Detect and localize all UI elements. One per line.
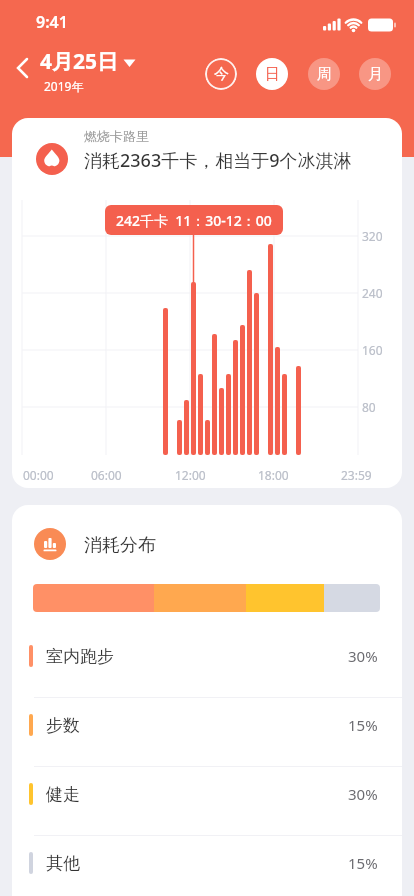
staticText: 240 <box>362 285 383 301</box>
staticText: 周 <box>317 65 332 84</box>
staticText: 日 <box>265 65 280 84</box>
staticText: 消耗分布 <box>84 534 156 557</box>
staticText: 室内跑步 <box>46 646 114 667</box>
staticText: 燃烧卡路里 <box>84 128 149 144</box>
button[interactable]: 周 <box>308 58 340 90</box>
staticText: 30% <box>348 646 378 666</box>
button[interactable]: 今 <box>205 58 237 90</box>
button[interactable]: 步数 <box>29 701 378 749</box>
staticText: 23:59 <box>341 467 372 483</box>
button[interactable]: 室内跑步 <box>29 632 378 680</box>
staticText: 月 <box>368 65 383 84</box>
button[interactable]: 健走 <box>29 770 378 818</box>
staticText: 4月25日 <box>40 47 119 76</box>
staticText: 00:00 <box>23 467 54 483</box>
staticText: 06:00 <box>91 467 122 483</box>
staticText: 242千卡 11：30-12：00 <box>116 211 272 230</box>
staticText: 今 <box>214 65 229 84</box>
staticText: 12:00 <box>175 467 206 483</box>
staticText: 160 <box>362 342 383 358</box>
staticText: 30% <box>348 784 378 804</box>
staticText: 健走 <box>46 784 80 805</box>
staticText: 15% <box>348 715 378 735</box>
staticText: 18:00 <box>258 467 289 483</box>
staticText: 步数 <box>46 715 80 736</box>
staticText: 9:41 <box>36 11 68 33</box>
button[interactable]: 其他 <box>29 839 378 887</box>
staticText: 其他 <box>46 853 80 874</box>
staticText: 15% <box>348 853 378 873</box>
button[interactable] <box>8 54 36 82</box>
button[interactable]: 4月25日 <box>40 47 136 76</box>
button[interactable]: 日 <box>256 58 288 90</box>
button[interactable]: 月 <box>359 58 391 90</box>
staticText: 消耗2363千卡，相当于9个冰淇淋 <box>84 148 352 173</box>
staticText: 320 <box>362 228 383 244</box>
staticText: 80 <box>362 399 376 415</box>
staticText: 2019年 <box>44 78 84 94</box>
